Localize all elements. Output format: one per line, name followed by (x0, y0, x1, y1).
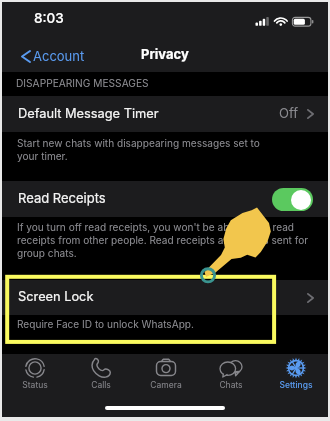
staticText: Account (33, 48, 85, 64)
button[interactable]: Read Receipts (2, 181, 328, 217)
staticText: Off (279, 105, 299, 121)
staticText: Start new chats with disappearing messag… (17, 137, 260, 162)
button[interactable]: Status (2, 354, 68, 417)
staticText: 8:03 (34, 10, 64, 26)
button[interactable]: Read receipts toggle, on (272, 188, 313, 211)
staticText: Require Face ID to unlock WhatsApp. (17, 318, 194, 330)
staticText: Read Receipts (18, 190, 106, 206)
staticText: Calls (91, 380, 111, 390)
staticText: Status (22, 380, 48, 390)
staticText: Chats (219, 380, 243, 390)
staticText: Camera (150, 380, 182, 390)
staticText: Screen Lock (18, 289, 94, 304)
button[interactable]: Account (21, 48, 85, 64)
button[interactable]: Settings (263, 354, 328, 417)
staticText: Privacy (141, 46, 189, 62)
staticText: If you turn off read receipts, you won't… (17, 221, 309, 259)
staticText: Settings (279, 380, 313, 390)
button[interactable]: Camera (133, 354, 198, 417)
button[interactable]: Chats (198, 354, 263, 417)
staticText: Default Message Timer (18, 106, 159, 121)
button[interactable]: Screen Lock (2, 280, 328, 315)
button[interactable]: Default Message Timer (2, 96, 328, 132)
staticText: DISAPPEARING MESSAGES (16, 77, 149, 89)
button[interactable]: Calls (68, 354, 133, 417)
